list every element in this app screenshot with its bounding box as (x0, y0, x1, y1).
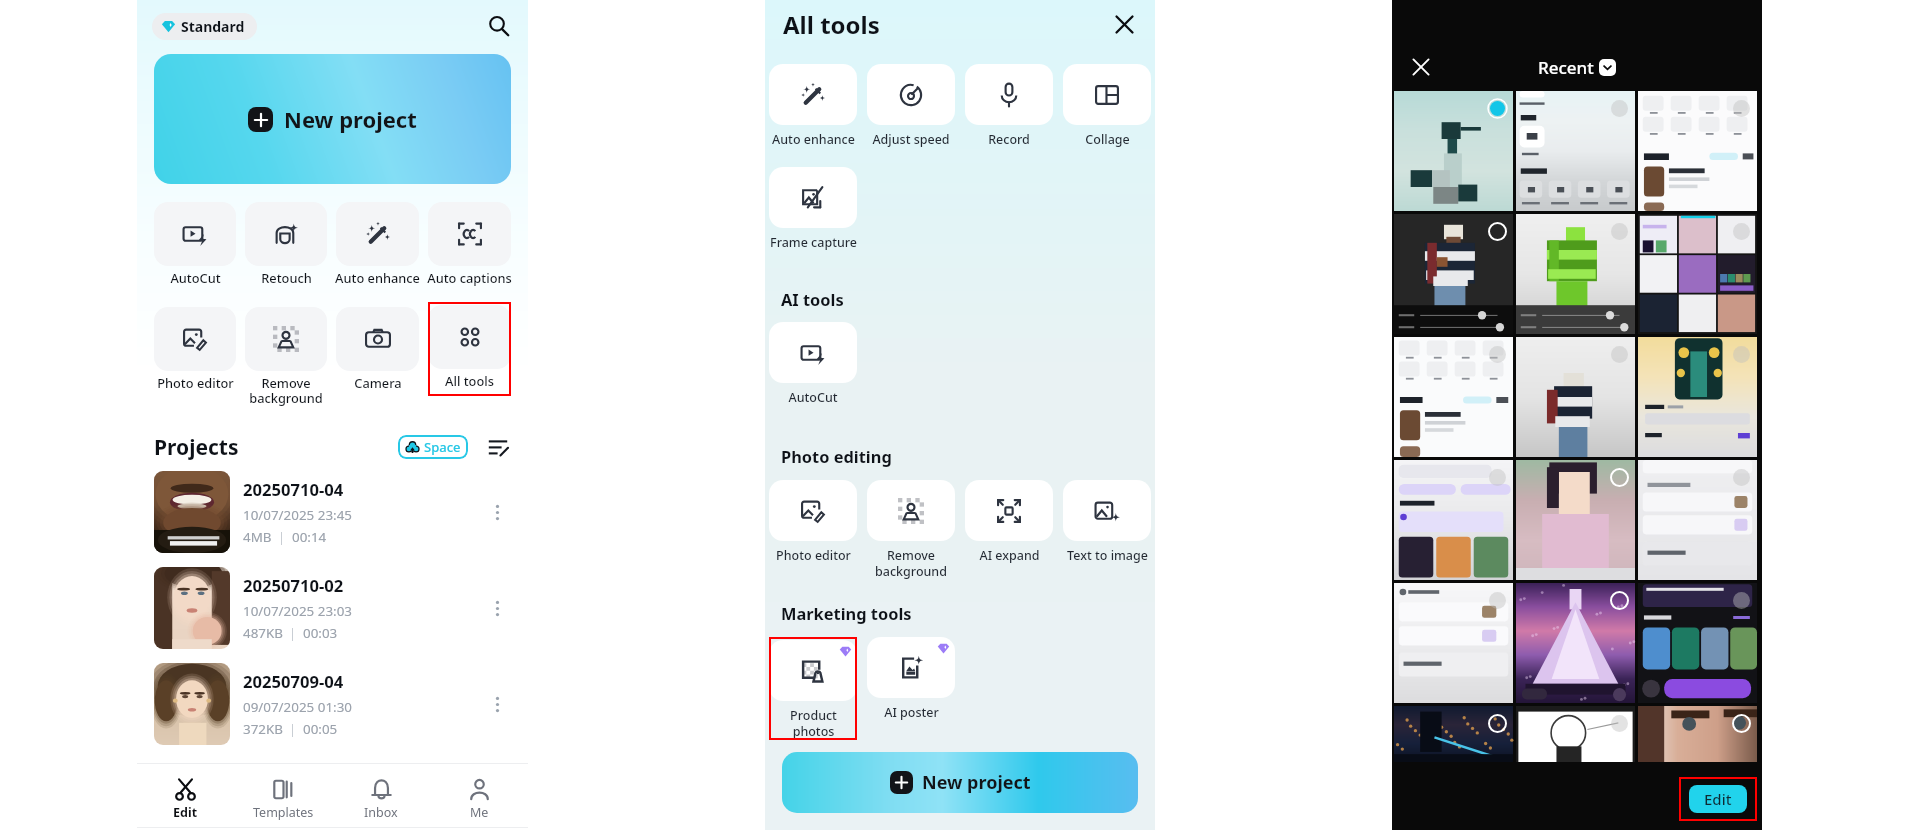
button[interactable]: Collage (1063, 64, 1151, 148)
button[interactable]: AutoCut (769, 322, 857, 406)
staticText: Auto enhance (335, 269, 420, 286)
button[interactable]: Edit (137, 764, 234, 830)
staticText: Edit (1704, 789, 1732, 809)
button[interactable] (1394, 337, 1513, 457)
button[interactable]: Me (430, 764, 528, 830)
button[interactable] (1638, 706, 1757, 762)
button[interactable]: More options (485, 596, 509, 620)
staticText: Photo editor (776, 547, 851, 564)
staticText: 372KB (243, 720, 283, 738)
button[interactable] (1394, 91, 1513, 211)
staticText: 4MB (243, 528, 272, 546)
staticText: | (283, 721, 303, 737)
staticText: Adjust speed (872, 131, 950, 148)
staticText: Camera (354, 374, 402, 391)
staticText: Remove background (249, 374, 323, 407)
staticText: Recent (1538, 56, 1594, 79)
button[interactable]: Space (398, 435, 468, 459)
staticText: Space (424, 438, 461, 456)
button[interactable]: Edit (1689, 785, 1747, 813)
staticText: Record (988, 131, 1030, 148)
button[interactable] (245, 307, 327, 371)
staticText: 20250710-04 (243, 478, 344, 501)
button[interactable] (1516, 583, 1635, 703)
button[interactable] (1638, 460, 1757, 580)
button[interactable]: Photo editor (769, 480, 857, 564)
staticText: New project (284, 104, 417, 134)
button[interactable]: All tools (428, 302, 511, 396)
staticText: 00:03 (303, 624, 338, 642)
button[interactable] (1394, 583, 1513, 703)
button[interactable]: New project (154, 54, 511, 184)
button[interactable] (1638, 337, 1757, 457)
button[interactable] (1638, 91, 1757, 211)
staticText: All tools (445, 372, 494, 389)
staticText: Auto captions (427, 269, 512, 286)
staticText: New project (922, 770, 1031, 795)
staticText: Frame capture (770, 234, 857, 251)
staticText: Photo editor (157, 374, 234, 391)
staticText: 00:14 (292, 528, 327, 546)
staticText: Text to image (1067, 547, 1148, 564)
staticText: Photo editing (781, 445, 892, 467)
staticText: 20250710-02 (243, 574, 344, 597)
button[interactable]: 20250709-04 (137, 662, 528, 746)
button[interactable]: Standard (152, 13, 257, 40)
button[interactable]: Text to image (1063, 480, 1151, 564)
button[interactable]: AI poster (867, 637, 955, 721)
button[interactable]: Frame capture (769, 167, 857, 251)
button[interactable]: Close (1406, 52, 1436, 82)
button[interactable]: Search (484, 11, 514, 41)
button[interactable]: AI expand (965, 480, 1053, 564)
button[interactable]: Auto enhance (769, 64, 857, 148)
staticText: | (272, 529, 292, 545)
button[interactable]: Edit list (487, 436, 509, 458)
button[interactable] (336, 307, 419, 371)
button[interactable]: 20250710-02 (137, 566, 528, 650)
button[interactable]: Templates (234, 764, 332, 830)
button[interactable] (428, 202, 511, 266)
button[interactable]: Recent (1392, 55, 1762, 79)
button[interactable] (1394, 214, 1513, 334)
button[interactable]: Inbox (332, 764, 430, 830)
button[interactable]: New project (782, 752, 1138, 813)
staticText: 20250709-04 (243, 670, 344, 693)
button[interactable]: Adjust speed (867, 64, 955, 148)
button[interactable]: More options (485, 692, 509, 716)
staticText: Standard (181, 17, 245, 36)
button[interactable]: Close (1109, 9, 1139, 39)
button[interactable] (1516, 706, 1635, 762)
staticText: AutoCut (170, 269, 221, 286)
button[interactable] (1516, 337, 1635, 457)
button[interactable] (1516, 91, 1635, 211)
staticText: Me (470, 804, 489, 821)
staticText: All tools (783, 8, 880, 41)
staticText: Edit (173, 804, 198, 821)
button[interactable] (1516, 214, 1635, 334)
staticText: AI poster (884, 704, 939, 721)
button[interactable]: Remove background (867, 480, 955, 579)
button[interactable] (154, 307, 236, 371)
staticText: Auto enhance (772, 131, 855, 148)
staticText: Inbox (364, 804, 398, 821)
button[interactable]: More options (485, 500, 509, 524)
staticText: AI tools (781, 288, 844, 310)
staticText: 10/07/2025 23:45 (243, 506, 352, 524)
button[interactable] (154, 202, 236, 266)
button[interactable] (245, 202, 327, 266)
button[interactable]: Product photos (769, 637, 857, 740)
button[interactable] (336, 202, 419, 266)
button[interactable] (1394, 706, 1513, 762)
button[interactable] (1638, 583, 1757, 703)
button[interactable]: 20250710-04 (137, 470, 528, 554)
staticText: AutoCut (788, 389, 838, 406)
button[interactable] (1638, 214, 1757, 334)
button[interactable] (1516, 460, 1635, 580)
button[interactable]: Record (965, 64, 1053, 148)
staticText: Remove background (875, 547, 947, 579)
staticText: Templates (253, 804, 314, 821)
staticText: 487KB (243, 624, 283, 642)
button[interactable] (1394, 460, 1513, 580)
staticText: Marketing tools (781, 602, 912, 624)
staticText: Retouch (261, 269, 312, 286)
